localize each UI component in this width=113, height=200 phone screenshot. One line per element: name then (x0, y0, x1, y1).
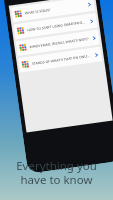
other: Open (88, 17, 94, 25)
button[interactable]: HOW TO START USING SMARTPHONE... (13, 13, 98, 39)
other: Open (90, 34, 96, 42)
other: Open (93, 51, 99, 58)
staticText: Everything you have to know (8, 158, 105, 187)
button[interactable]: WHAT IS VIRUS? (11, 0, 95, 22)
staticText: STANDS OF WHAT'S THAT ON ONLI... (32, 53, 92, 66)
button[interactable]: WHEN EMAIL INSTALL WHAT'S NEXT? (16, 30, 100, 56)
staticText: WHEN EMAIL INSTALL WHAT'S NEXT? (29, 36, 89, 49)
other: Open (86, 0, 92, 8)
button[interactable]: STANDS OF WHAT'S THAT ON ONLI... (18, 46, 102, 73)
staticText: WHAT IS VIRUS? (24, 2, 85, 16)
staticText: HOW TO START USING SMARTPHONE... (27, 19, 87, 32)
